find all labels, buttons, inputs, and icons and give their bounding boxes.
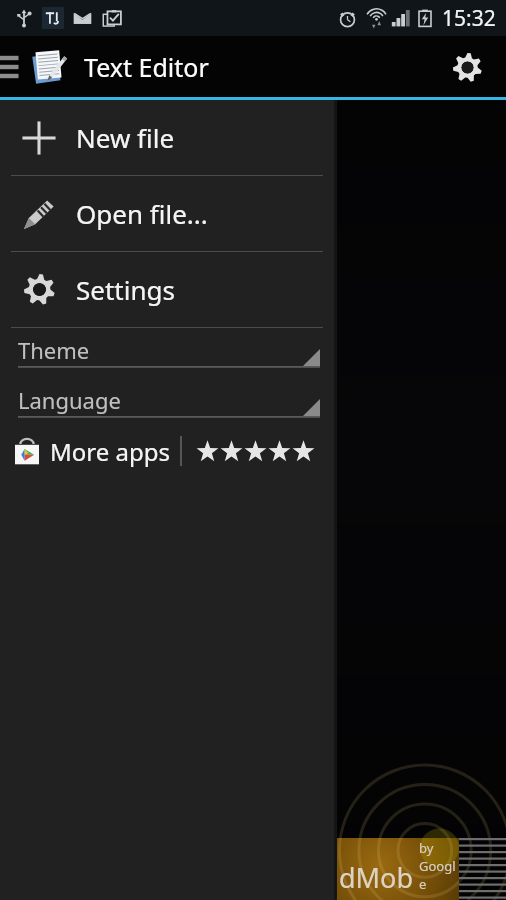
button[interactable]: Language (18, 384, 320, 418)
staticText: New file (76, 120, 175, 155)
staticText: dMob (339, 859, 414, 896)
staticText: 15:32 (442, 4, 496, 33)
button[interactable]: Open file... (0, 176, 337, 251)
button[interactable]: Settings (444, 44, 490, 90)
staticText: by Google (419, 839, 459, 893)
staticText: Language (18, 385, 121, 415)
staticText: Theme (18, 335, 90, 365)
button[interactable]: New file (0, 100, 337, 175)
staticText: Open file... (76, 196, 208, 231)
button[interactable]: Theme (18, 334, 320, 368)
button[interactable]: Settings (0, 252, 337, 327)
button[interactable]: Rate five stars (182, 434, 329, 469)
staticText: More apps (50, 435, 170, 468)
staticText: Text Editor (84, 50, 209, 84)
staticText: Settings (76, 272, 175, 307)
button[interactable]: More apps (0, 435, 180, 468)
button[interactable]: Open navigation drawer (0, 50, 26, 84)
